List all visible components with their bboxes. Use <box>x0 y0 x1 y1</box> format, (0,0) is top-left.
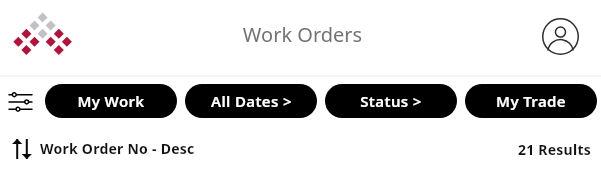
other: Sort order <box>13 139 33 159</box>
button[interactable]: My Trade <box>465 84 597 118</box>
staticText: My Work <box>77 91 145 111</box>
staticText: All Dates > <box>211 91 292 111</box>
button[interactable]: Filter <box>3 86 38 117</box>
staticText: 21 Results <box>0 140 591 159</box>
button[interactable]: Status > <box>325 84 457 118</box>
button[interactable]: All Dates > <box>185 84 317 118</box>
staticText: My Trade <box>496 91 566 111</box>
button[interactable]: Account <box>539 15 581 57</box>
staticText: Status > <box>360 91 422 111</box>
button[interactable]: Sort order <box>8 132 183 164</box>
button[interactable]: My Work <box>45 84 177 118</box>
staticText: Work Orders <box>2 21 601 48</box>
staticText: Work Order No - Desc <box>40 139 195 158</box>
